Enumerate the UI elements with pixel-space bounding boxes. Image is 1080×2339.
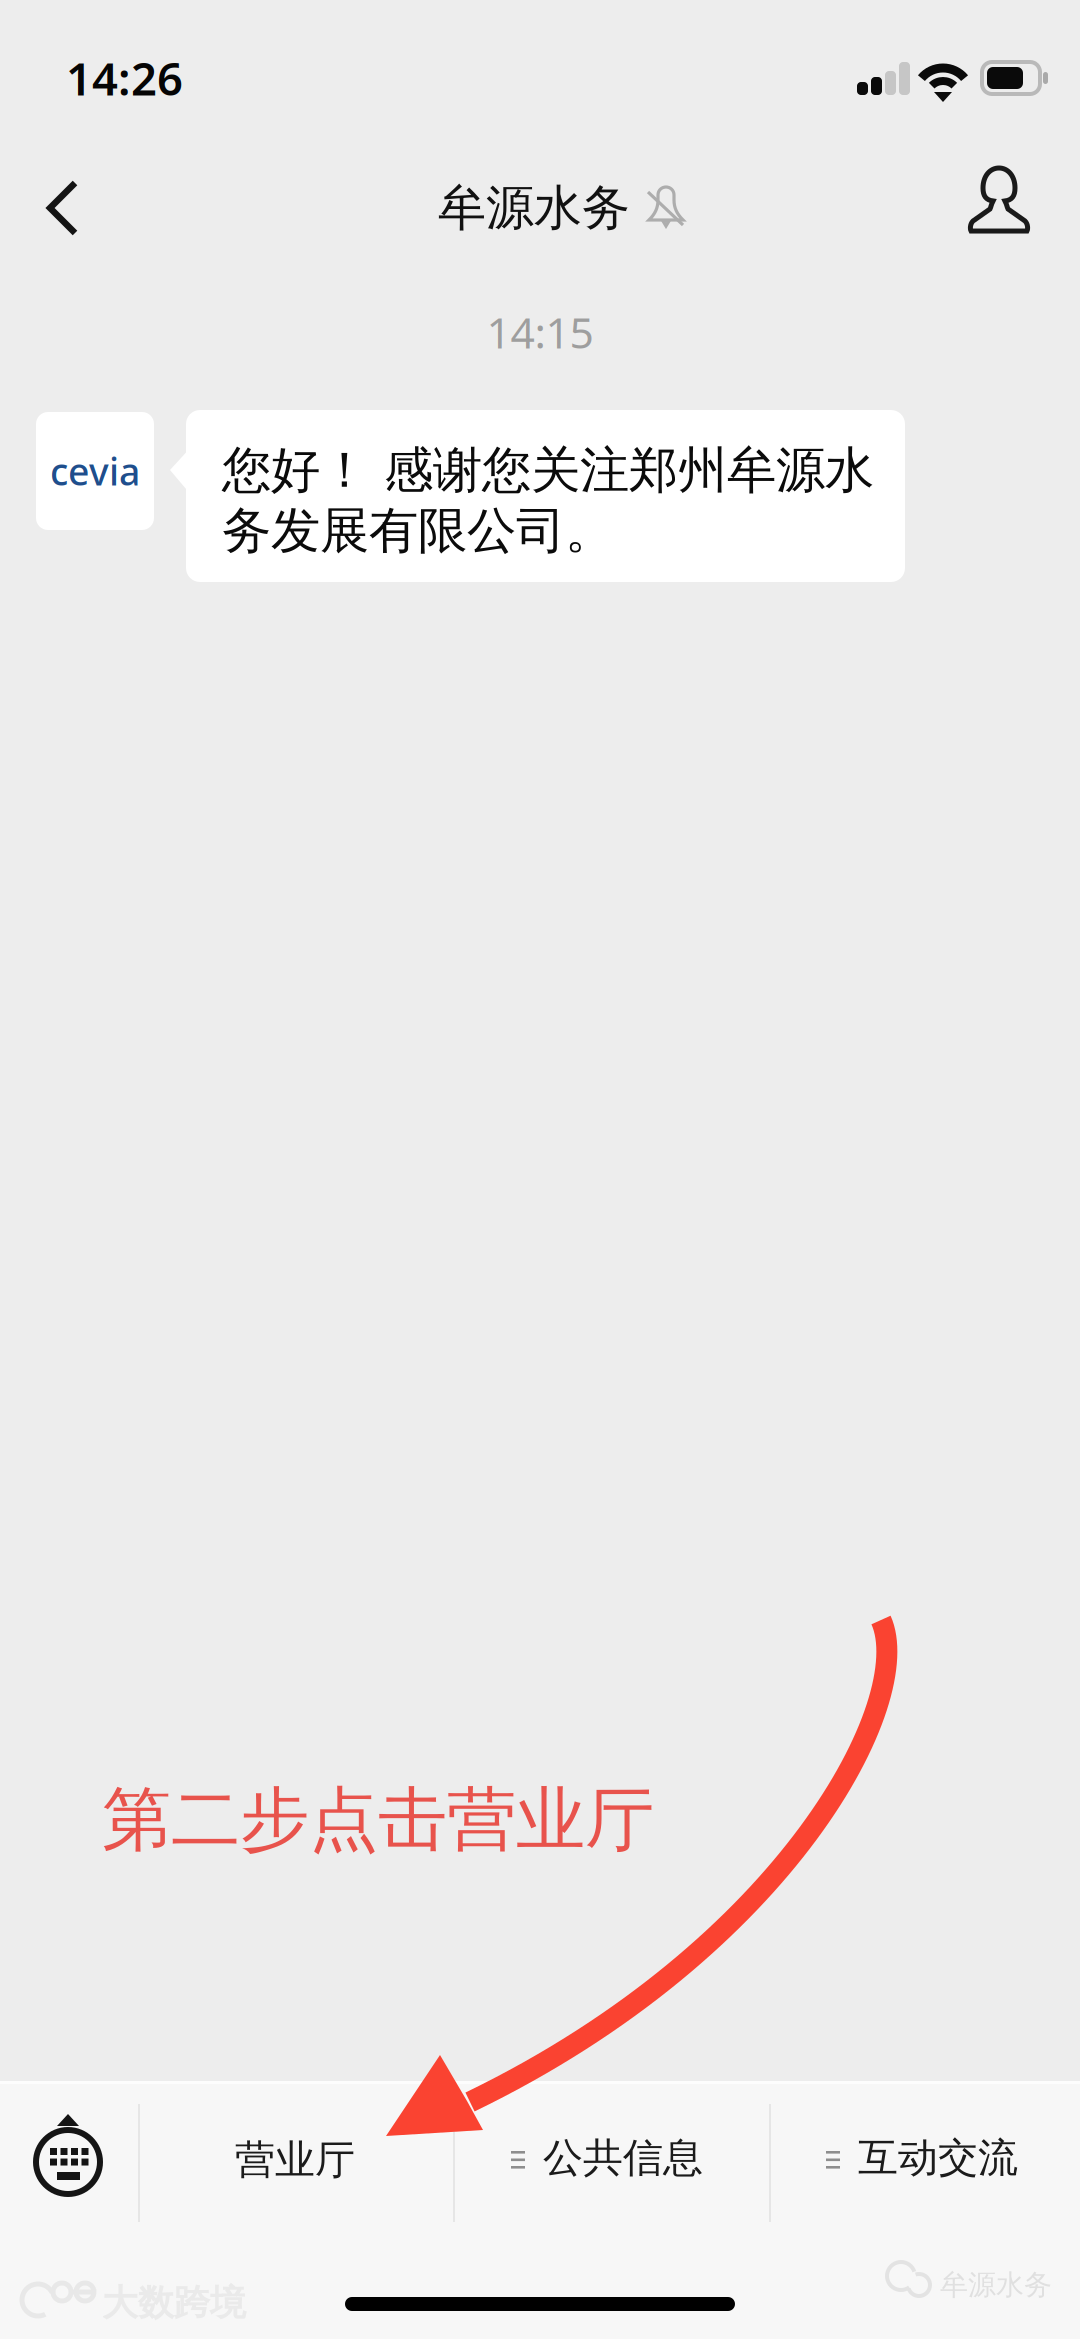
staticText: 14:15 <box>486 304 593 360</box>
button[interactable]: Keyboard <box>0 0 1080 2339</box>
button[interactable]: 互动交流 <box>0 0 1080 2339</box>
staticText: cevia <box>50 446 140 496</box>
staticText: 您好！ 感谢您关注郑州牟源水 <box>222 440 874 501</box>
button[interactable]: 公共信息 <box>0 0 1080 2339</box>
staticText: 牟源水务 <box>940 2268 1052 2302</box>
staticText: 营业厅 <box>235 2135 355 2184</box>
staticText: 大数跨境 <box>102 2281 246 2325</box>
staticText: 14:26 <box>66 48 183 108</box>
staticText: 牟源水务 <box>438 178 630 237</box>
staticText: 务发展有限公司。 <box>222 501 614 561</box>
button[interactable]: Contact profile <box>0 0 1080 2339</box>
staticText: 互动交流 <box>858 2133 1018 2182</box>
staticText: 第二步点击营业厅 <box>102 1777 654 1863</box>
staticText: 公共信息 <box>543 2133 703 2182</box>
button[interactable]: Back <box>0 0 1080 2339</box>
